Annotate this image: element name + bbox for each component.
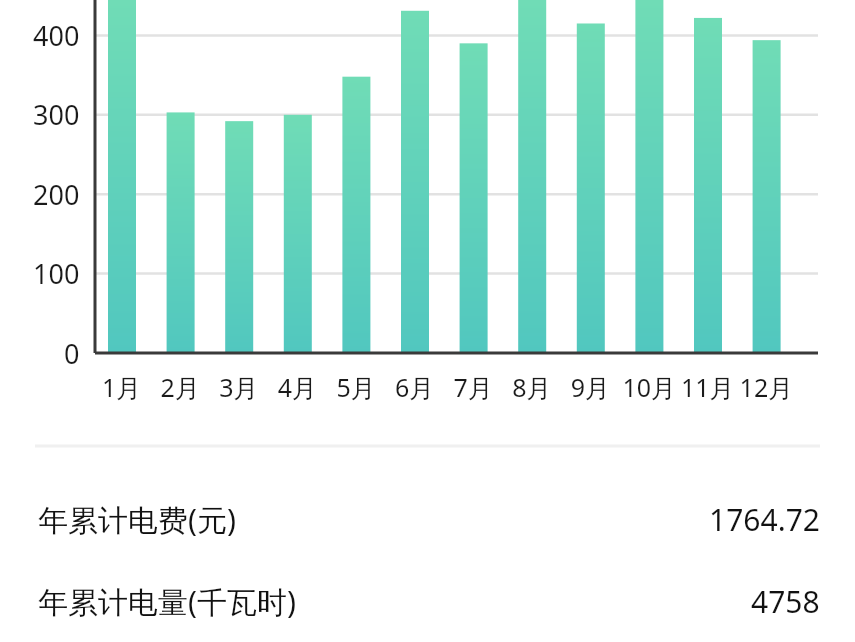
button[interactable] [0, 0, 855, 642]
